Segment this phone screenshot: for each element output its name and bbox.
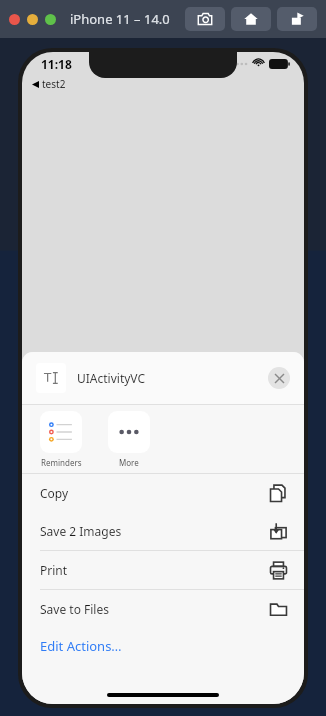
button[interactable]: [27, 14, 38, 25]
button[interactable]: Copy: [22, 474, 304, 512]
staticText: iPhone 11 – 14.0: [70, 10, 170, 28]
staticText: UIActivityVC: [77, 370, 146, 386]
staticText: Print: [40, 562, 68, 578]
staticText: Save 2 Images: [40, 523, 122, 539]
staticText: test2: [42, 77, 66, 91]
button[interactable]: Share: [277, 7, 317, 31]
staticText: Reminders: [41, 457, 82, 468]
button[interactable]: Close: [268, 367, 290, 389]
button[interactable]: Screenshot: [185, 7, 225, 31]
button[interactable]: [9, 14, 20, 25]
button[interactable]: Print: [22, 551, 304, 589]
button[interactable]: Save 2 Images: [22, 512, 304, 550]
button[interactable]: Edit Actions…: [22, 628, 304, 664]
button[interactable]: Reminders: [38, 411, 84, 468]
button[interactable]: [45, 14, 56, 25]
button[interactable]: Home: [231, 7, 271, 31]
staticText: Save to Files: [40, 601, 109, 617]
staticText: Edit Actions…: [40, 637, 122, 655]
staticText: 11:18: [41, 56, 72, 72]
button[interactable]: test2: [30, 77, 68, 91]
button[interactable]: UIActivityVC: [36, 363, 146, 393]
staticText: Copy: [40, 485, 69, 501]
staticText: More: [119, 457, 139, 468]
button[interactable]: Save to Files: [22, 590, 304, 628]
button[interactable]: More: [106, 411, 152, 468]
